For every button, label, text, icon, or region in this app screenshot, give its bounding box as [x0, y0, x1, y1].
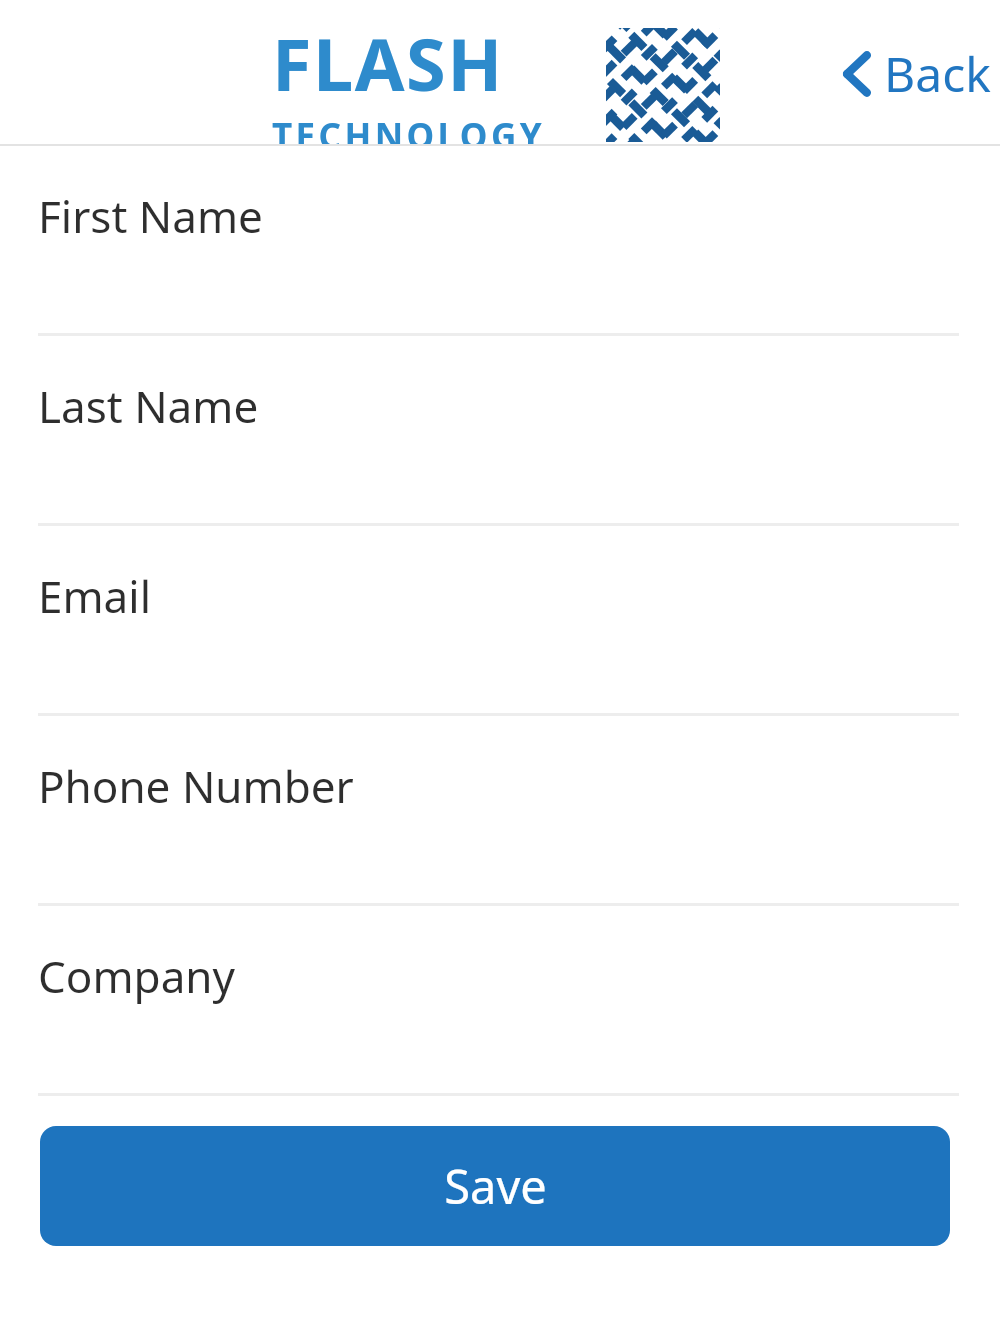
staticText: Save — [444, 1154, 547, 1218]
other: Back — [840, 48, 872, 100]
staticText: Back — [884, 41, 991, 106]
button[interactable]: Last Name — [0, 336, 1000, 526]
button[interactable]: Email — [0, 526, 1000, 716]
button[interactable]: Back — [834, 33, 997, 114]
staticText: Company — [38, 946, 235, 1006]
button[interactable]: Save — [40, 1126, 950, 1246]
staticText: Phone Number — [38, 756, 354, 816]
staticText: First Name — [38, 186, 263, 246]
button[interactable]: Company — [0, 906, 1000, 1096]
staticText: Email — [38, 566, 151, 626]
button[interactable]: Phone Number — [0, 716, 1000, 906]
staticText: Last Name — [38, 376, 259, 436]
button[interactable]: First Name — [0, 146, 1000, 336]
staticText: TECHNOLOGY — [272, 112, 545, 146]
staticText: FLASH — [272, 14, 504, 112]
